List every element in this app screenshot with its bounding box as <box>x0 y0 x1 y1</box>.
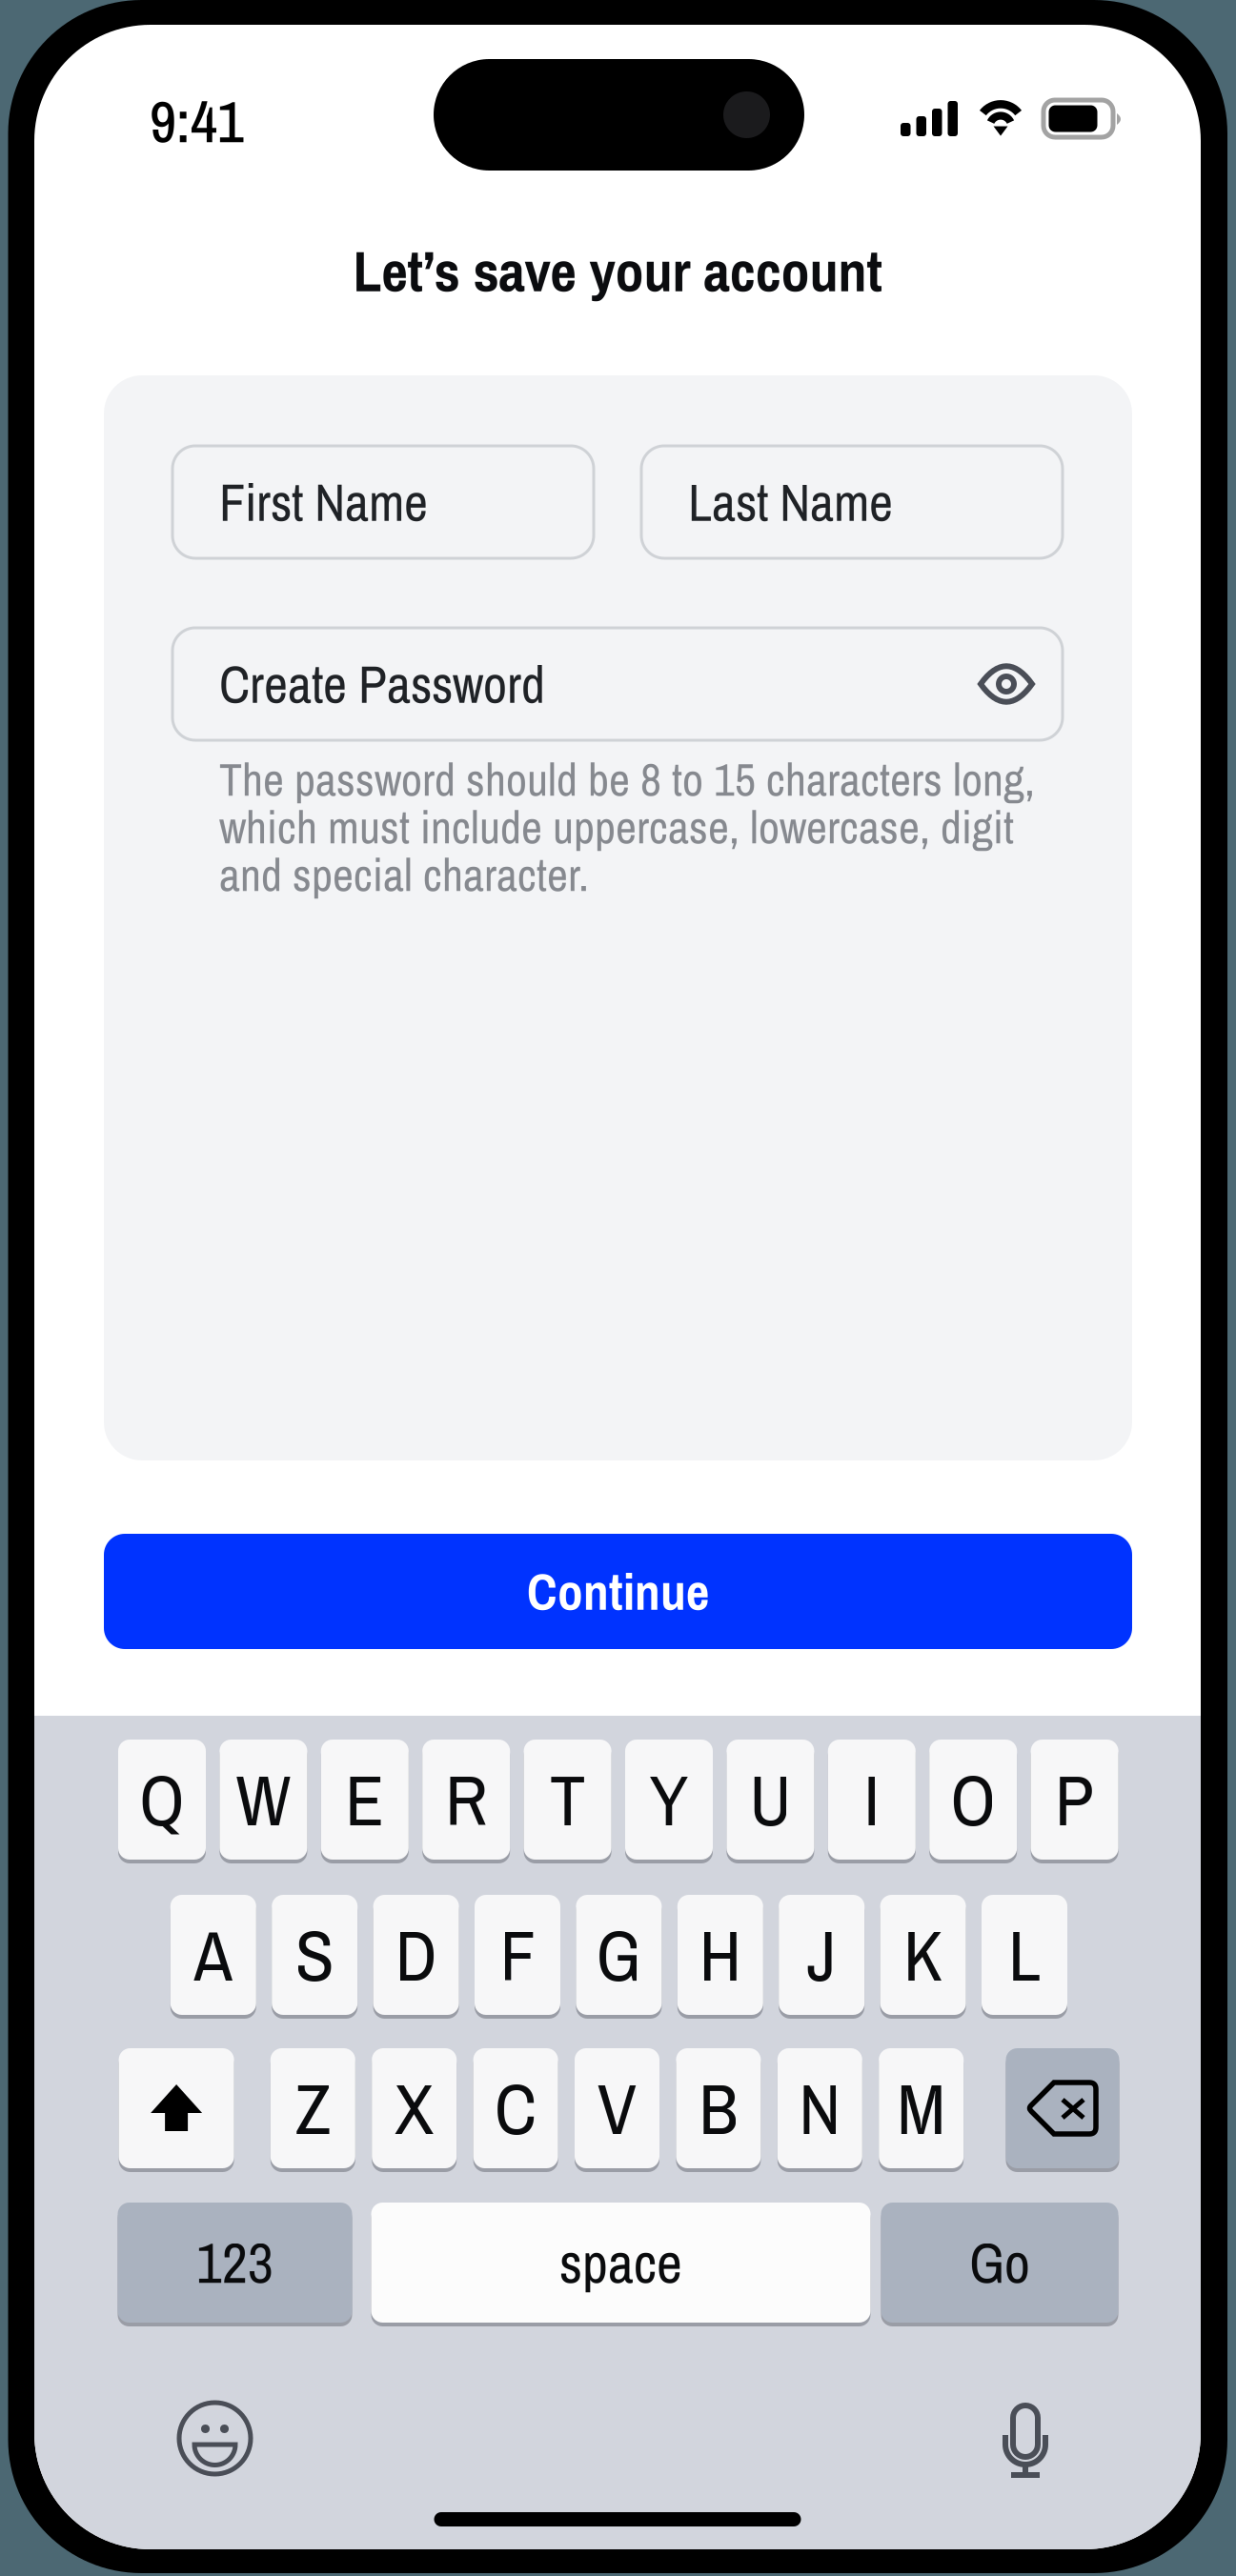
button[interactable]: Last Name <box>641 446 1063 558</box>
button[interactable]: Dictation <box>1004 2405 1046 2479</box>
staticText: L <box>1008 1907 1041 2003</box>
button[interactable]: N <box>777 2048 862 2172</box>
button[interactable]: H <box>677 1895 763 2019</box>
staticText: M <box>897 2060 946 2156</box>
staticText: The password should be 8 to 15 character… <box>219 749 1035 810</box>
button[interactable]: V <box>575 2048 659 2172</box>
button[interactable]: Shift <box>119 2048 234 2172</box>
button[interactable]: 123 <box>118 2203 352 2326</box>
staticText: C <box>495 2060 537 2156</box>
button[interactable]: J <box>779 1895 865 2019</box>
button[interactable]: Emoji keyboard <box>178 2402 252 2475</box>
staticText: which must include uppercase, lowercase,… <box>219 796 1014 858</box>
staticText: B <box>699 2060 738 2156</box>
staticText: J <box>807 1907 836 2003</box>
button[interactable]: Delete <box>1006 2048 1119 2172</box>
staticText: Q <box>139 1752 185 1847</box>
staticText: E <box>345 1752 384 1847</box>
staticText: 9:41 <box>150 82 244 160</box>
button[interactable]: D <box>373 1895 459 2019</box>
staticText: S <box>295 1907 334 2003</box>
staticText: I <box>864 1752 880 1847</box>
staticText: Last Name <box>688 467 893 537</box>
staticText: R <box>445 1752 487 1847</box>
button[interactable]: F <box>475 1895 560 2019</box>
button[interactable]: W <box>220 1740 307 1863</box>
button[interactable]: Y <box>625 1740 713 1863</box>
button[interactable]: R <box>422 1740 510 1863</box>
button[interactable]: space <box>371 2203 871 2326</box>
staticText: U <box>749 1752 791 1847</box>
staticText: W <box>236 1752 291 1847</box>
staticText: X <box>395 2060 434 2156</box>
button[interactable]: P <box>1031 1740 1118 1863</box>
button[interactable]: A <box>170 1895 256 2019</box>
button[interactable]: C <box>473 2048 558 2172</box>
button[interactable]: L <box>982 1895 1067 2019</box>
button[interactable]: S <box>272 1895 358 2019</box>
button[interactable]: B <box>676 2048 761 2172</box>
staticText: First Name <box>219 467 428 537</box>
staticText: V <box>598 2060 637 2156</box>
staticText: F <box>500 1907 535 2003</box>
staticText: Go <box>969 2225 1030 2300</box>
button[interactable]: Continue <box>104 1534 1132 1649</box>
button[interactable]: T <box>524 1740 611 1863</box>
staticText: 123 <box>196 2225 274 2300</box>
button[interactable]: I <box>828 1740 916 1863</box>
staticText: Create Password <box>219 649 545 719</box>
button[interactable]: U <box>727 1740 814 1863</box>
button[interactable]: G <box>576 1895 662 2019</box>
button[interactable]: Create Password <box>172 628 1063 740</box>
button[interactable]: Go <box>881 2203 1118 2326</box>
button[interactable]: O <box>929 1740 1017 1863</box>
staticText: K <box>904 1907 943 2003</box>
staticText: Y <box>649 1752 689 1847</box>
button[interactable]: M <box>879 2048 964 2172</box>
staticText: T <box>550 1752 585 1847</box>
button[interactable]: Q <box>118 1740 206 1863</box>
button[interactable]: K <box>880 1895 966 2019</box>
staticText: Continue <box>527 1557 709 1626</box>
staticText: D <box>395 1907 437 2003</box>
button[interactable]: X <box>372 2048 457 2172</box>
staticText: A <box>194 1907 233 2003</box>
staticText: space <box>559 2225 682 2300</box>
button[interactable]: E <box>321 1740 409 1863</box>
staticText: and special character. <box>219 844 589 905</box>
staticText: Let’s save your account <box>353 232 882 309</box>
staticText: G <box>596 1907 642 2003</box>
button[interactable]: First Name <box>172 446 594 558</box>
staticText: P <box>1055 1752 1094 1847</box>
staticText: O <box>950 1752 996 1847</box>
staticText: N <box>799 2060 841 2156</box>
staticText: Z <box>295 2060 330 2156</box>
staticText: H <box>699 1907 741 2003</box>
button[interactable]: Z <box>270 2048 355 2172</box>
